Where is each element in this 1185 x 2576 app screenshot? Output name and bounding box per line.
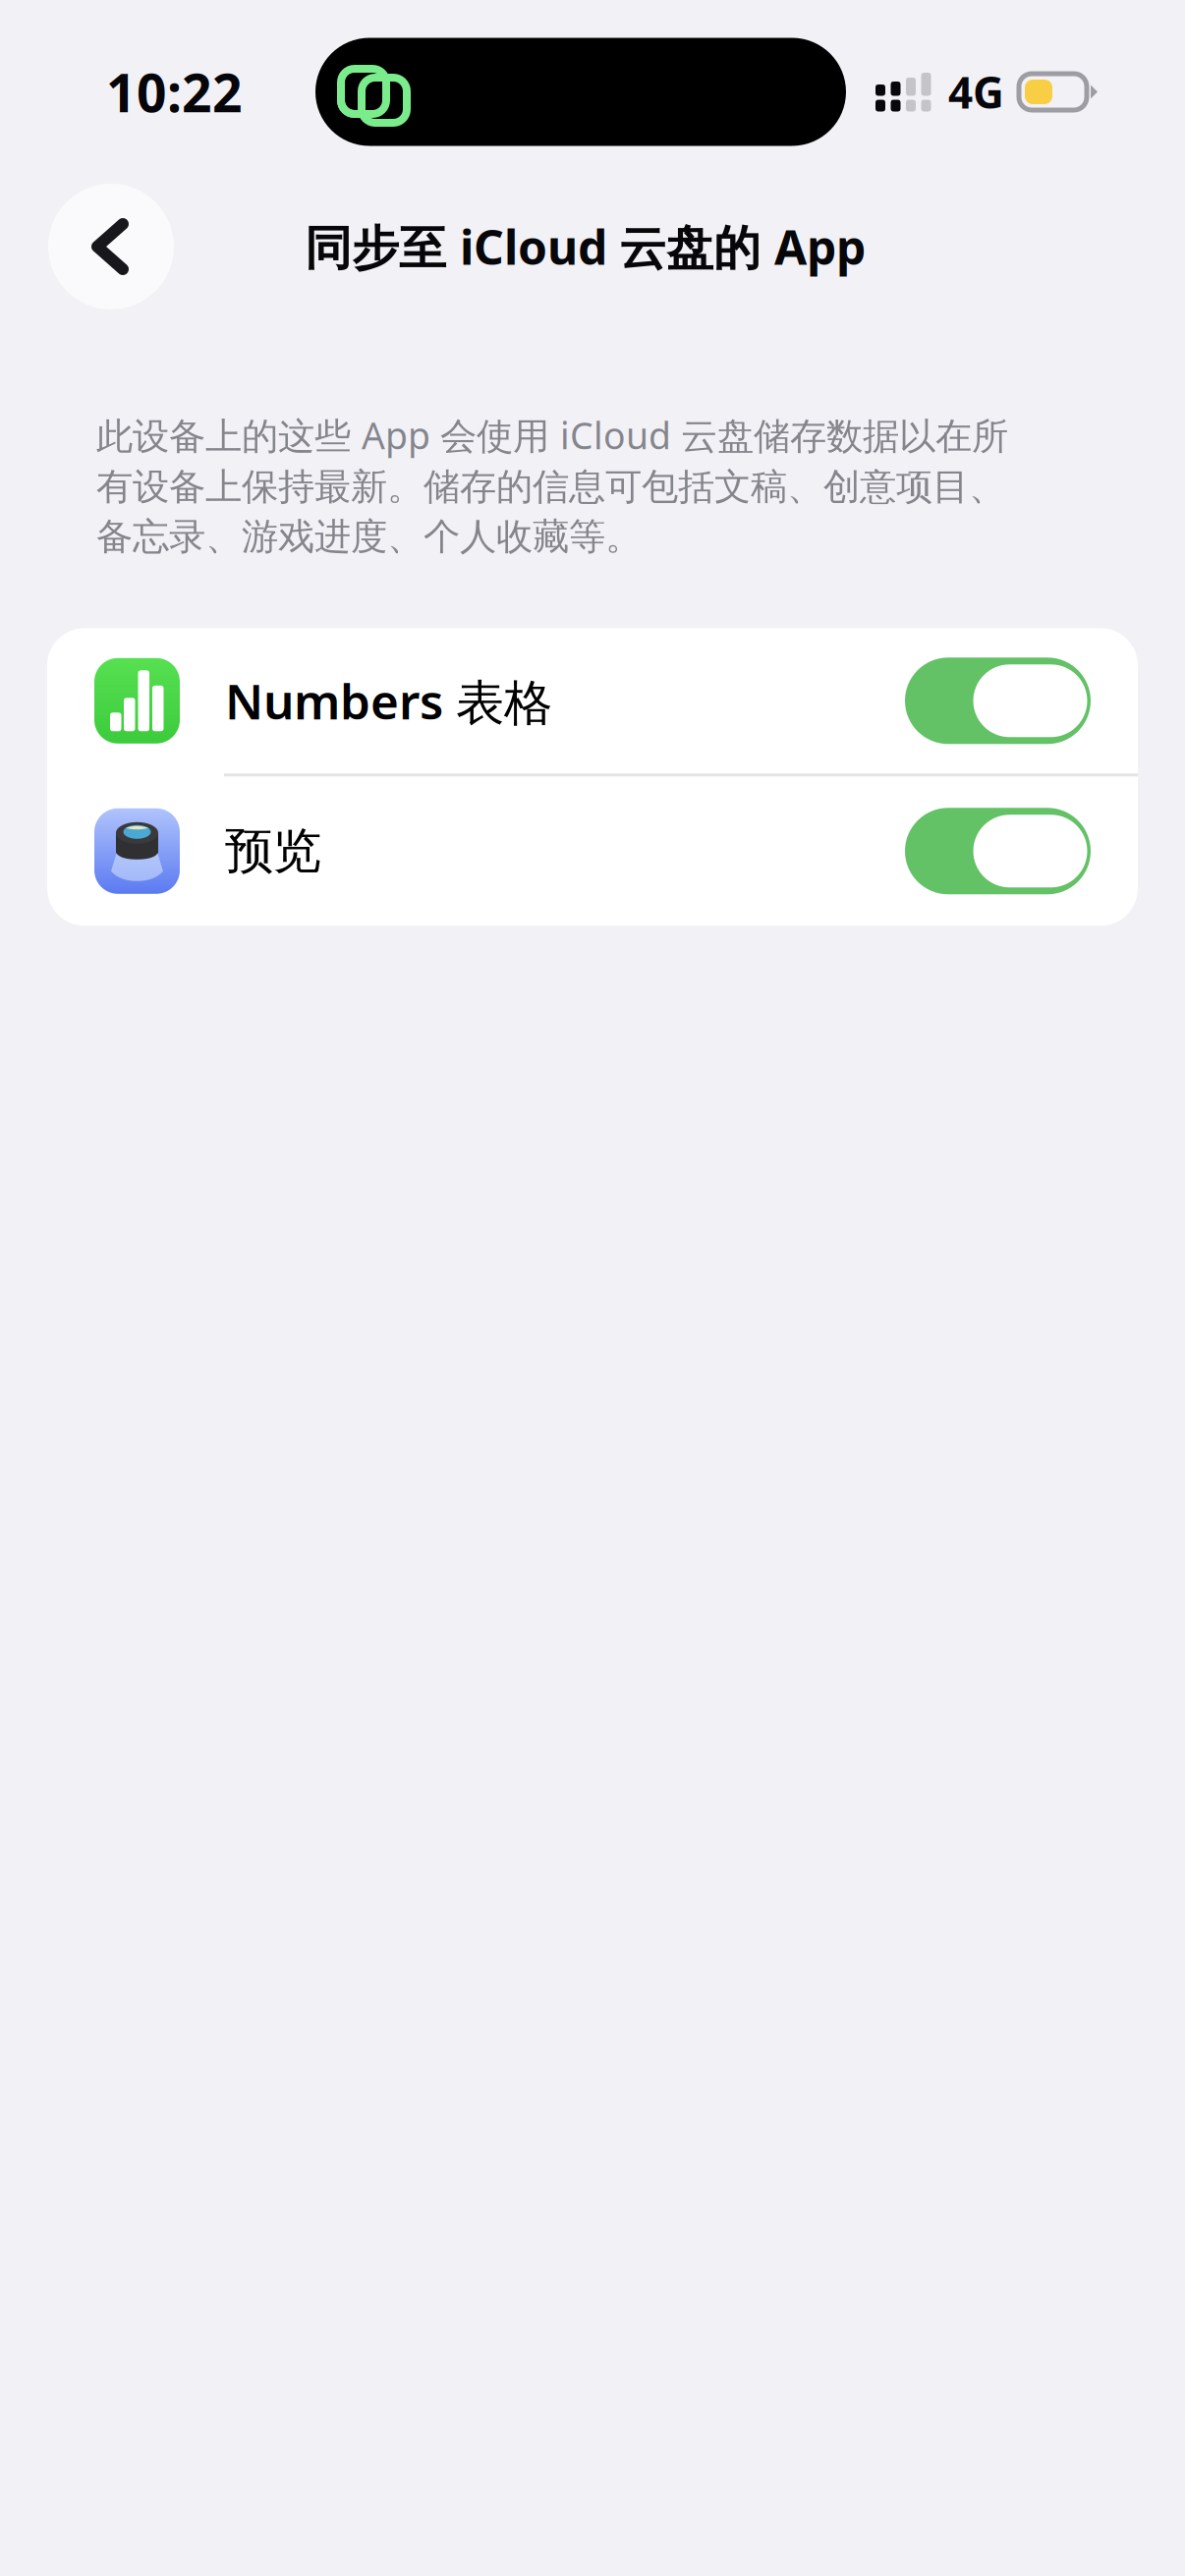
- staticText: 4G: [948, 63, 1004, 121]
- button[interactable]: Numbers 表格: [47, 628, 1138, 773]
- button[interactable]: 预览: [47, 776, 1138, 926]
- button[interactable]: 返回: [48, 184, 174, 309]
- staticText: 预览: [225, 821, 321, 881]
- staticText: Numbers 表格: [225, 668, 552, 733]
- staticText: 同步至 iCloud 云盘的 App: [305, 215, 866, 278]
- staticText: 此设备上的这些 App 会使用 iCloud 云盘储存数据以在所有设备上保持最新…: [96, 411, 1008, 559]
- staticText: 10:22: [106, 57, 243, 127]
